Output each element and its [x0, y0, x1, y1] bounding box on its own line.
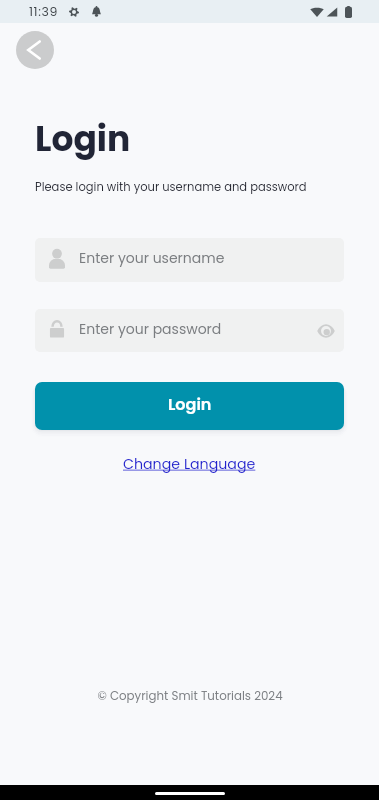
staticText: © Copyright Smit Tutorials 2024: [97, 688, 283, 705]
button[interactable]: Show password: [311, 316, 341, 346]
staticText: Please login with your username and pass…: [35, 179, 307, 195]
button[interactable]: Back: [16, 31, 54, 69]
staticText: Login: [168, 393, 212, 415]
staticText: Login: [35, 115, 131, 163]
staticText: Enter your password: [79, 319, 222, 339]
staticText: 11:39: [29, 3, 58, 20]
button[interactable]: Change Language: [119, 452, 260, 476]
button[interactable]: Enter your password: [35, 309, 344, 352]
button[interactable]: Enter your username: [35, 238, 344, 282]
staticText: Enter your username: [79, 248, 225, 268]
button[interactable]: Login: [35, 382, 344, 430]
